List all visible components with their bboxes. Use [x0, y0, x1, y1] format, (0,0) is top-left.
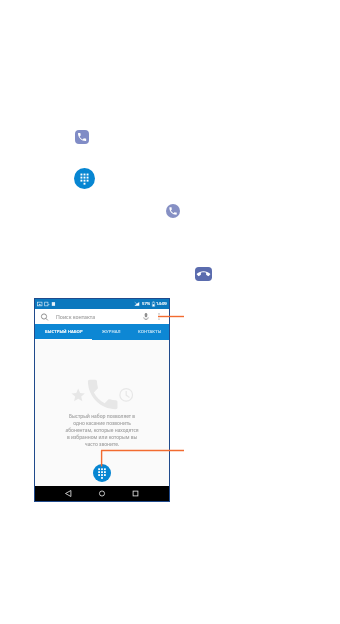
button[interactable]: Dialpad [74, 168, 95, 189]
staticText: Поиск контакта [56, 313, 96, 320]
staticText: Быстрый набор позволяет в одно касание п… [52, 413, 152, 448]
button[interactable]: End call [195, 267, 212, 281]
button[interactable]: ЖУРНАЛ [92, 324, 130, 340]
button[interactable]: КОНТАКТЫ [130, 324, 169, 340]
button[interactable]: Phone app [75, 130, 89, 144]
staticText: КОНТАКТЫ [138, 329, 162, 335]
button[interactable]: БЫСТРЫЙ НАБОР [35, 324, 92, 340]
staticText: БЫСТРЫЙ НАБОР [45, 329, 83, 335]
staticText: ЖУРНАЛ [102, 329, 121, 335]
staticText: 14:09 [156, 301, 167, 307]
button[interactable]: Call [166, 204, 180, 218]
button[interactable]: Dialpad [93, 464, 111, 482]
staticText: 57% [142, 301, 151, 307]
